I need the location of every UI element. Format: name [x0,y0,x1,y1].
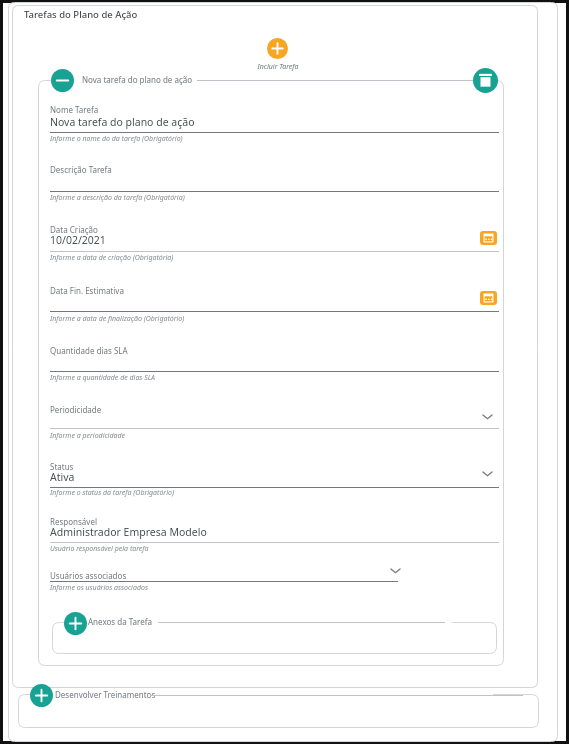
staticText: Status [50,461,74,472]
button[interactable]: Abrir lista [481,412,494,421]
staticText: Informe a descrição da tarefa (Obrigatór… [50,193,185,203]
staticText: Descrição Tarefa [50,164,112,175]
button[interactable]: Recolher tarefa [51,69,74,92]
staticText: Quantidade dias SLA [50,345,128,356]
staticText: Desenvolver Treinamentos [55,689,156,700]
staticText: Data Criação [50,224,98,235]
staticText: 10/02/2021 [50,233,106,247]
button[interactable]: Adicionar anexo [64,612,87,635]
button[interactable]: Selecionar data [480,291,497,305]
staticText: Informe o status da tarefa (Obrigatório) [50,488,174,498]
staticText: Informe a periodicidade [50,431,125,441]
staticText: Data Fin. Estimativa [50,285,124,296]
button[interactable]: Incluir Tarefa [267,38,288,59]
button[interactable]: Abrir lista [481,469,494,478]
button[interactable]: Expandir Desenvolver Treinamentos [30,684,53,707]
staticText: Informe a data de criação (Obrigatória) [50,253,174,263]
staticText: Informe a quantidade de dias SLA [50,373,156,383]
staticText: Informe o nome do da tarefa (Obrigatório… [50,134,183,144]
staticText: Usuários associados [50,570,127,581]
button[interactable]: Selecionar data [480,231,497,245]
staticText: Anexos da Tarefa [88,616,152,627]
staticText: Informe os usuários associados [50,583,148,593]
staticText: Incluir Tarefa [238,62,318,73]
staticText: Nova tarefa do plano de ação [82,74,193,85]
staticText: Usuário responsável pela tarefa [50,544,149,554]
staticText: Nome Tarefa [50,104,99,115]
staticText: Tarefas do Plano de Ação [24,8,138,21]
staticText: Ativa [50,470,75,484]
staticText: Administrador Empresa Modelo [50,525,207,539]
button[interactable]: Excluir tarefa [473,68,498,93]
staticText: Nova tarefa do plano de ação [50,115,195,129]
staticText: Responsável [50,516,97,527]
staticText: Periodicidade [50,404,102,415]
staticText: Informe a data de finalização (Obrigatór… [50,314,185,324]
button[interactable]: Abrir lista [389,566,402,575]
